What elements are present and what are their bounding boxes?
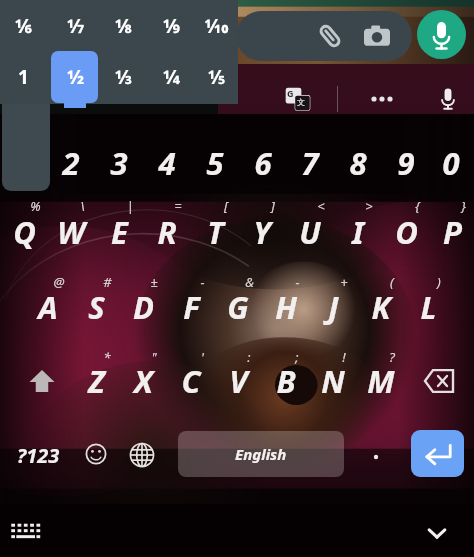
button[interactable]: B [263,358,309,404]
button[interactable]: X [120,358,166,404]
button[interactable]: 1 [1,140,47,186]
button[interactable]: R [144,209,190,255]
button[interactable]: 1 [0,52,47,102]
button[interactable]: * [84,334,130,380]
button[interactable]: - [179,259,225,305]
button[interactable]: ? [369,334,415,380]
button[interactable]: 1⁄9 [148,2,195,50]
button[interactable]: M [358,358,404,404]
button[interactable]: H [263,284,309,330]
button[interactable]: ; [274,334,320,380]
button[interactable]: 3 [96,140,142,186]
button[interactable]: Backspace [412,360,462,402]
button[interactable]: ( [369,259,415,305]
button[interactable]: 1⁄2 [52,52,99,102]
button[interactable]: 9 [383,140,429,186]
button[interactable]: < [298,183,344,229]
button[interactable]: 4 [144,140,190,186]
staticText: ( [390,273,394,291]
button[interactable]: } [440,183,474,229]
button[interactable]: Keyboard [8,518,44,544]
button[interactable]: 1⁄5 [193,52,240,102]
button[interactable]: - [274,259,320,305]
button[interactable]: & [226,259,272,305]
button[interactable]: 7 [287,140,333,186]
button[interactable]: ] [250,183,296,229]
button[interactable]: > [346,183,392,229]
button[interactable]: A [25,284,71,330]
button[interactable]: E [96,209,142,255]
button[interactable]: % [12,183,58,229]
button[interactable]: P [429,209,474,255]
button[interactable]: = [155,183,201,229]
button[interactable]: Change language [124,437,160,473]
button[interactable]: Voice message [417,10,466,59]
button[interactable]: 6 [240,140,286,186]
staticText: 0 [442,142,460,184]
button[interactable]: T [192,209,238,255]
staticText: ' [201,348,204,366]
button[interactable]: ! [321,334,367,380]
button[interactable]: Enter [411,430,464,477]
staticText: - [295,273,300,291]
button[interactable]: 1⁄10 [193,2,240,50]
button[interactable]: L [405,284,451,330]
button[interactable]: 1⁄8 [100,2,147,50]
button[interactable]: ?123 [10,437,66,473]
button[interactable]: F [168,284,214,330]
button[interactable]: @ [36,259,82,305]
button[interactable]: Shift [18,358,66,404]
button[interactable]: Voice input [434,84,462,112]
staticText: K [371,286,391,328]
button[interactable] [236,11,412,61]
button[interactable]: " [131,334,177,380]
button[interactable]: D [120,284,166,330]
button[interactable]: I [335,209,381,255]
button[interactable]: ± [131,259,177,305]
button[interactable]: 1⁄7 [52,2,99,50]
button[interactable]: 5 [192,140,238,186]
button[interactable]: { [394,183,440,229]
button[interactable]: More options [362,85,402,113]
button[interactable]: Translate [284,85,312,113]
button[interactable]: 1⁄6 [0,2,47,50]
button[interactable]: 1⁄4 [148,52,195,102]
button[interactable]: V [215,358,261,404]
button[interactable]: 1⁄3 [100,52,147,102]
button[interactable]: Hide keyboard [420,516,454,550]
button[interactable]: N [310,358,356,404]
button[interactable]: [ [203,183,249,229]
button[interactable]: Camera [364,24,390,50]
button[interactable]: O [383,209,429,255]
staticText: N [321,360,345,402]
button[interactable]: 8 [335,140,381,186]
button[interactable]: C [168,358,214,404]
button[interactable]: U [287,209,333,255]
button[interactable]: Attach [316,22,344,50]
button[interactable] [51,51,98,103]
button[interactable]: S [73,284,119,330]
staticText: 1⁄7 [67,13,84,39]
button[interactable]: | [107,183,153,229]
button[interactable]: # [84,259,130,305]
button[interactable]: \ [59,183,105,229]
staticText: ) [437,273,441,291]
button[interactable]: W [48,209,94,255]
staticText: < [317,197,325,215]
button[interactable]: Z [73,358,119,404]
button[interactable]: English [178,431,344,477]
button[interactable]: K [358,284,404,330]
button[interactable]: Y [239,209,285,255]
staticText: ! [342,348,346,366]
button[interactable]: 2 [48,140,94,186]
button[interactable]: G [215,284,261,330]
button[interactable]: Q [1,209,47,255]
button[interactable]: 0 [428,140,474,186]
button[interactable]: ) [416,259,462,305]
staticText: ; [295,348,299,366]
button[interactable]: ' [179,334,225,380]
button[interactable]: + [321,259,367,305]
button[interactable]: J [310,284,356,330]
button[interactable]: : [226,334,272,380]
button[interactable]: Emoji [80,438,112,470]
